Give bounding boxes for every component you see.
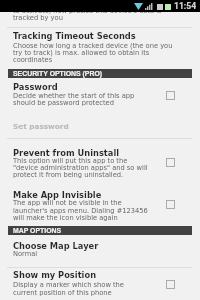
staticText: protect it from being uninstalled. bbox=[13, 171, 124, 179]
button[interactable] bbox=[0, 79, 200, 108]
staticText: Choose Map Layer bbox=[13, 241, 99, 251]
staticText: 11:54 bbox=[174, 1, 197, 11]
staticText: to activate, how precise this device's d… bbox=[13, 7, 162, 15]
staticText: Password bbox=[13, 82, 58, 92]
staticText: coordinates bbox=[13, 56, 53, 64]
button[interactable] bbox=[0, 115, 200, 137]
staticText: Display a marker which show the bbox=[13, 281, 124, 289]
button[interactable] bbox=[0, 28, 200, 69]
staticText: Prevent from Uninstall bbox=[13, 148, 120, 158]
staticText: Normal bbox=[13, 250, 38, 258]
staticText: SECURITY OPTIONS (PRO) bbox=[13, 70, 103, 78]
staticText: "device administration apps" and so will bbox=[13, 164, 148, 172]
staticText: Show my Position bbox=[13, 270, 97, 280]
staticText: will make the icon visible again bbox=[13, 214, 118, 222]
staticText: current position of this phone bbox=[13, 289, 112, 297]
button[interactable] bbox=[0, 268, 200, 300]
staticText: should be password protected bbox=[13, 99, 114, 107]
staticText: tracked by you bbox=[13, 14, 63, 22]
button[interactable] bbox=[0, 185, 200, 226]
staticText: launcher's apps menu. Dialing #123456 bbox=[13, 207, 148, 215]
staticText: Set password bbox=[13, 122, 69, 130]
staticText: MAP OPTIONS bbox=[13, 227, 62, 235]
staticText: This option will put this app to the bbox=[13, 157, 128, 165]
staticText: The app will not be visible in the bbox=[13, 199, 122, 207]
button[interactable] bbox=[0, 236, 200, 264]
staticText: Decide whether the start of this app bbox=[13, 92, 135, 100]
staticText: Make App Invisible bbox=[13, 190, 102, 200]
staticText: try to track) is max. allowed to obtain … bbox=[13, 49, 150, 57]
button[interactable] bbox=[0, 142, 200, 183]
staticText: Tracking Timeout Seconds bbox=[13, 31, 136, 41]
staticText: Choose how long a tracked device (the on… bbox=[13, 42, 173, 50]
